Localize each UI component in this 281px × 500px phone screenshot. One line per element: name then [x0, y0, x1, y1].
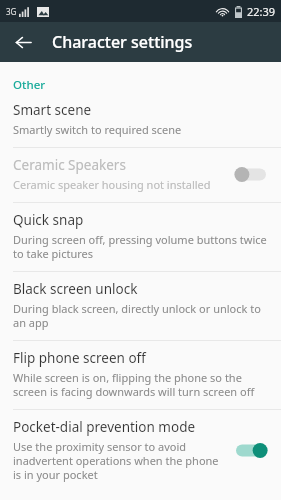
- staticText: Quick snap: [13, 211, 84, 229]
- button[interactable]: Smart scene: [0, 95, 281, 147]
- button[interactable]: Toggle Ceramic Speakers: [231, 164, 271, 185]
- staticText: Smartly switch to required scene: [13, 122, 182, 137]
- staticText: 3G: [6, 6, 17, 17]
- staticText: Flip phone screen off: [13, 349, 146, 367]
- button[interactable]: Back: [6, 25, 40, 59]
- staticText: During screen off, pressing volume butto…: [13, 232, 271, 261]
- button[interactable]: Flip phone screen off: [0, 341, 281, 409]
- button[interactable]: Ceramic Speakers: [0, 148, 281, 202]
- staticText: During black screen, directly unlock or …: [13, 301, 271, 330]
- staticText: Character settings: [52, 31, 193, 53]
- staticText: While screen is on, flipping the phone s…: [13, 370, 271, 399]
- staticText: 22:39: [247, 4, 276, 19]
- staticText: Use the proximity sensor to avoid inadve…: [13, 439, 223, 482]
- staticText: Black screen unlock: [13, 280, 138, 298]
- staticText: Smart scene: [13, 101, 92, 119]
- staticText: Ceramic Speakers: [13, 156, 126, 174]
- button[interactable]: Black screen unlock: [0, 272, 281, 340]
- staticText: Ceramic speaker housing not installed: [13, 177, 211, 192]
- staticText: Other: [13, 77, 46, 93]
- staticText: Pocket-dial prevention mode: [13, 418, 196, 436]
- button[interactable]: Quick snap: [0, 203, 281, 271]
- button[interactable]: Toggle Pocket-dial prevention mode: [231, 440, 271, 461]
- button[interactable]: Pocket-dial prevention mode: [0, 410, 281, 492]
